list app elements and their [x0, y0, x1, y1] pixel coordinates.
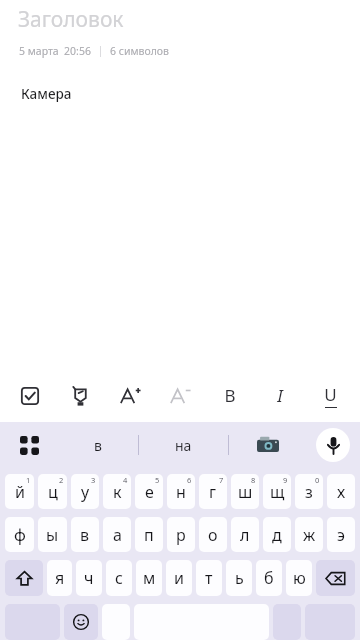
staticText: д [272, 524, 282, 546]
button[interactable]: л [231, 517, 259, 552]
staticText: ш [238, 481, 253, 503]
staticText: ы [46, 524, 59, 546]
staticText: 7 [219, 475, 224, 485]
staticText: на [175, 436, 192, 455]
button[interactable]: н [167, 474, 195, 509]
button[interactable]: ч [76, 560, 102, 596]
button[interactable]: д [263, 517, 291, 552]
button[interactable]: Emoji [64, 604, 98, 640]
staticText: е [145, 481, 154, 503]
button[interactable]: я [47, 560, 72, 596]
staticText: я [55, 567, 65, 589]
button[interactable]: на [139, 422, 228, 468]
button[interactable]: и [166, 560, 192, 596]
button[interactable]: о [199, 517, 227, 552]
button[interactable]: ы [38, 517, 67, 552]
staticText: а [113, 524, 122, 546]
button[interactable]: Bold [205, 369, 255, 422]
button[interactable]: к [103, 474, 131, 509]
button[interactable]: ю [286, 560, 312, 596]
button[interactable]: п [135, 517, 163, 552]
button[interactable]: щ [263, 474, 291, 509]
button[interactable]: м [136, 560, 162, 596]
button[interactable]: Shift [5, 560, 43, 596]
button[interactable]: Underline [305, 369, 355, 422]
staticText: л [240, 524, 250, 546]
button[interactable]: у [71, 474, 99, 509]
staticText: щ [270, 481, 285, 503]
staticText: Камера [21, 85, 72, 103]
button[interactable]: Checklist [5, 369, 55, 422]
staticText: ч [84, 567, 94, 589]
staticText: в [80, 524, 90, 546]
staticText: 6 символов [110, 44, 169, 58]
button[interactable]: ц [38, 474, 67, 509]
button[interactable]: Keyboard menu [0, 422, 58, 468]
button[interactable]: э [327, 517, 355, 552]
staticText: U [324, 383, 337, 406]
staticText: 1 [26, 475, 31, 485]
staticText: 0 [315, 475, 320, 485]
button[interactable]: е [135, 474, 163, 509]
staticText: б [264, 567, 274, 589]
button[interactable]: ш [231, 474, 259, 509]
staticText: о [208, 524, 218, 546]
button[interactable]: й [5, 474, 34, 509]
button[interactable]: Highlighter [55, 369, 105, 422]
staticText: м [143, 567, 156, 589]
button[interactable]: х [327, 474, 355, 509]
button[interactable]: Increase text size [105, 369, 155, 422]
staticText: 6 [187, 475, 192, 485]
staticText: н [176, 481, 186, 503]
staticText: 4 [123, 475, 128, 485]
staticText: п [144, 524, 154, 546]
staticText: ф [14, 524, 26, 546]
staticText: 8 [251, 475, 256, 485]
button[interactable]: в [71, 517, 99, 552]
staticText: 3 [91, 475, 96, 485]
button[interactable]: Emoji camera [229, 422, 306, 468]
button[interactable]: Voice input [306, 422, 360, 468]
button[interactable]: а [103, 517, 131, 552]
button[interactable]: ж [295, 517, 323, 552]
button[interactable]: ф [5, 517, 34, 552]
button[interactable]: в [58, 422, 138, 468]
staticText: 5 марта 20:56 [19, 44, 91, 58]
button[interactable]: Decrease text size [155, 369, 205, 422]
staticText: р [176, 524, 186, 546]
button[interactable]: Backspace [316, 560, 355, 596]
staticText: г [209, 481, 217, 503]
staticText: т [205, 567, 213, 589]
staticText: 2 [59, 475, 64, 485]
staticText: в [94, 436, 102, 455]
staticText: с [115, 567, 123, 589]
button[interactable]: з [295, 474, 323, 509]
staticText: и [174, 567, 184, 589]
staticText: 5 [155, 475, 160, 485]
staticText: ь [235, 567, 244, 589]
staticText: 9 [283, 475, 288, 485]
staticText: B [224, 384, 236, 407]
button[interactable]: с [106, 560, 132, 596]
staticText: к [113, 481, 122, 503]
button[interactable]: ь [226, 560, 252, 596]
staticText: ж [303, 524, 316, 546]
staticText: э [337, 524, 345, 546]
button[interactable]: б [256, 560, 282, 596]
staticText: ц [48, 481, 58, 503]
staticText: у [81, 481, 90, 503]
staticText: ю [293, 567, 306, 589]
button[interactable]: Italic [255, 369, 305, 422]
staticText: й [15, 481, 25, 503]
staticText: Заголовок [18, 5, 124, 34]
staticText: I [277, 384, 283, 407]
button[interactable]: г [199, 474, 227, 509]
button[interactable]: т [196, 560, 222, 596]
button[interactable]: р [167, 517, 195, 552]
staticText: х [337, 481, 346, 503]
